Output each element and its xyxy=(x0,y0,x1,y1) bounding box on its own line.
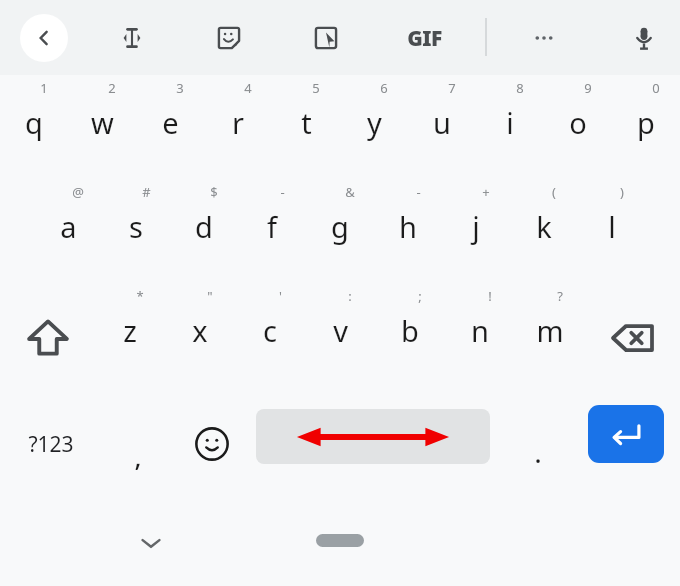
staticText: ) xyxy=(620,183,624,201)
staticText: a xyxy=(60,207,77,246)
button[interactable]: Backspace xyxy=(585,283,680,387)
button[interactable]: 7 xyxy=(408,75,476,179)
staticText: 8 xyxy=(516,79,524,97)
staticText: GIF xyxy=(407,24,442,53)
button[interactable]: Emoji xyxy=(174,387,250,501)
staticText: 2 xyxy=(108,79,116,97)
button[interactable]: " xyxy=(165,283,235,387)
staticText: p xyxy=(637,103,655,142)
staticText: i xyxy=(506,103,514,142)
button[interactable]: 8 xyxy=(476,75,544,179)
button[interactable]: & xyxy=(306,179,374,283)
button[interactable]: Move cursor xyxy=(108,14,156,62)
staticText: v xyxy=(333,311,348,350)
button[interactable]: Shift xyxy=(0,283,95,387)
staticText: 5 xyxy=(312,79,320,97)
button[interactable]: 3 xyxy=(136,75,204,179)
staticText: ( xyxy=(552,183,556,201)
button[interactable]: ; xyxy=(375,283,445,387)
button[interactable]: Voice input xyxy=(620,14,668,62)
staticText: g xyxy=(331,207,349,246)
button[interactable]: Hide keyboard xyxy=(122,519,180,567)
staticText: ?123 xyxy=(28,430,74,459)
button[interactable]: Space xyxy=(256,409,490,464)
button[interactable]: Stickers xyxy=(205,14,253,62)
button[interactable]: 6 xyxy=(340,75,408,179)
staticText: 3 xyxy=(176,79,184,97)
button[interactable]: ( xyxy=(510,179,578,283)
staticText: # xyxy=(142,183,151,201)
button[interactable]: ! xyxy=(445,283,515,387)
staticText: f xyxy=(267,207,277,246)
staticText: d xyxy=(195,207,213,246)
staticText: $ xyxy=(210,183,218,201)
button[interactable]: ' xyxy=(235,283,305,387)
staticText: - xyxy=(416,183,421,201)
staticText: r xyxy=(232,103,244,142)
staticText: " xyxy=(207,287,213,305)
staticText: k xyxy=(536,207,552,246)
staticText: ! xyxy=(488,287,492,305)
button[interactable]: 0 xyxy=(612,75,680,179)
button[interactable]: $ xyxy=(170,179,238,283)
button[interactable]: Enter xyxy=(588,405,664,463)
button[interactable]: 9 xyxy=(544,75,612,179)
staticText: o xyxy=(569,103,587,142)
staticText: ? xyxy=(557,287,563,305)
staticText: j xyxy=(472,207,480,246)
staticText: x xyxy=(192,311,208,350)
staticText: c xyxy=(263,311,277,350)
button[interactable]: , xyxy=(102,387,174,501)
button[interactable]: Handwriting xyxy=(302,14,350,62)
staticText: 0 xyxy=(652,79,660,97)
staticText: q xyxy=(25,103,43,142)
button[interactable]: - xyxy=(374,179,442,283)
button[interactable]: : xyxy=(305,283,375,387)
button[interactable]: . xyxy=(500,387,576,501)
staticText: ' xyxy=(279,287,282,305)
button[interactable]: 5 xyxy=(272,75,340,179)
staticText: 7 xyxy=(448,79,456,97)
button[interactable]: + xyxy=(442,179,510,283)
staticText: h xyxy=(399,207,417,246)
staticText: ; xyxy=(418,287,422,305)
staticText: , xyxy=(134,439,142,474)
button[interactable]: # xyxy=(102,179,170,283)
staticText: b xyxy=(401,311,419,350)
staticText: @ xyxy=(72,183,84,201)
button[interactable]: 2 xyxy=(68,75,136,179)
staticText: y xyxy=(367,103,382,142)
button[interactable]: Back xyxy=(20,14,68,62)
staticText: n xyxy=(471,311,489,350)
staticText: 4 xyxy=(244,79,252,97)
staticText: & xyxy=(345,183,355,201)
staticText: 6 xyxy=(380,79,388,97)
button[interactable]: @ xyxy=(34,179,102,283)
button[interactable]: GIF xyxy=(391,14,457,62)
staticText: 1 xyxy=(40,79,48,97)
staticText: : xyxy=(348,287,352,305)
staticText: - xyxy=(280,183,285,201)
staticText: + xyxy=(482,183,490,201)
button[interactable]: * xyxy=(95,283,165,387)
staticText: z xyxy=(123,311,137,350)
staticText: * xyxy=(136,287,144,305)
button[interactable]: 1 xyxy=(0,75,68,179)
button[interactable]: ? xyxy=(515,283,585,387)
staticText: . xyxy=(534,435,542,470)
staticText: l xyxy=(608,207,616,246)
staticText: e xyxy=(162,103,179,142)
button[interactable]: 4 xyxy=(204,75,272,179)
staticText: s xyxy=(129,207,143,246)
button[interactable]: More options xyxy=(520,14,568,62)
button[interactable]: ?123 xyxy=(0,387,102,501)
staticText: w xyxy=(91,103,114,142)
staticText: t xyxy=(301,103,312,142)
staticText: u xyxy=(433,103,451,142)
button[interactable]: Home xyxy=(316,534,364,547)
staticText: m xyxy=(536,311,564,350)
button[interactable]: - xyxy=(238,179,306,283)
staticText: 9 xyxy=(584,79,592,97)
button[interactable]: ) xyxy=(578,179,646,283)
